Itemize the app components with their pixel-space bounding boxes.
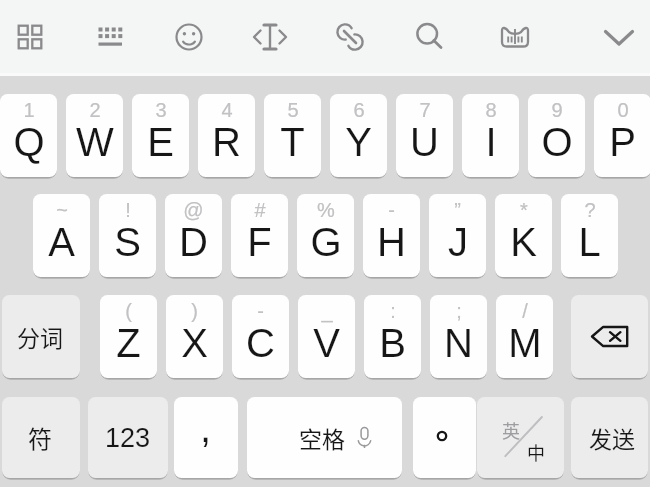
- button[interactable]: 5: [264, 94, 321, 177]
- staticText: 英: [502, 417, 520, 443]
- staticText: 3: [155, 99, 167, 121]
- button[interactable]: (: [100, 295, 157, 378]
- button[interactable]: Backspace: [571, 295, 648, 378]
- staticText: 7: [419, 99, 431, 121]
- staticText: 符: [28, 420, 52, 455]
- staticText: F: [247, 220, 272, 265]
- staticText: D: [179, 220, 208, 265]
- button[interactable]: -: [363, 194, 420, 277]
- button[interactable]: 123: [88, 397, 168, 478]
- button[interactable]: !: [99, 194, 156, 277]
- staticText: E: [147, 120, 174, 165]
- button[interactable]: #: [231, 194, 288, 277]
- staticText: 6: [353, 99, 365, 121]
- staticText: ?: [584, 199, 596, 221]
- button[interactable]: -: [232, 295, 289, 378]
- staticText: Y: [345, 120, 372, 165]
- button[interactable]: Keyboard layout: [84, 11, 136, 63]
- staticText: 发送: [589, 421, 635, 454]
- staticText: ): [191, 300, 198, 322]
- staticText: H: [377, 220, 406, 265]
- button[interactable]: 分词: [2, 295, 80, 378]
- button[interactable]: 3: [132, 94, 189, 177]
- button[interactable]: Voice input: [489, 11, 541, 63]
- staticText: :: [390, 300, 396, 322]
- button[interactable]: 发送: [571, 397, 648, 478]
- staticText: B: [379, 321, 406, 366]
- staticText: #: [254, 199, 266, 221]
- staticText: ~: [56, 199, 68, 221]
- button[interactable]: Switch English Chinese: [477, 397, 564, 478]
- staticText: P: [609, 120, 636, 165]
- staticText: W: [76, 120, 114, 165]
- staticText: S: [114, 220, 141, 265]
- staticText: X: [181, 321, 208, 366]
- staticText: 123: [105, 423, 151, 453]
- button[interactable]: %: [297, 194, 354, 277]
- staticText: T: [280, 120, 305, 165]
- staticText: *: [520, 199, 528, 221]
- staticText: I: [485, 120, 497, 165]
- button[interactable]: 4: [198, 94, 255, 177]
- staticText: G: [310, 220, 342, 265]
- staticText: A: [48, 220, 75, 265]
- button[interactable]: Cursor move: [244, 11, 296, 63]
- button[interactable]: ?: [561, 194, 618, 277]
- staticText: %: [317, 199, 335, 221]
- button[interactable]: Emoji: [163, 11, 215, 63]
- staticText: -: [257, 300, 264, 322]
- staticText: 中: [527, 439, 545, 465]
- staticText: N: [444, 321, 473, 366]
- staticText: @: [183, 199, 204, 221]
- staticText: 2: [89, 99, 101, 121]
- button[interactable]: Comma: [174, 397, 238, 478]
- button[interactable]: *: [495, 194, 552, 277]
- button[interactable]: Search: [404, 11, 456, 63]
- staticText: 0: [617, 99, 629, 121]
- staticText: U: [410, 120, 439, 165]
- staticText: 1: [23, 99, 35, 121]
- button[interactable]: Full stop: [413, 397, 476, 478]
- button[interactable]: Grid: [4, 11, 56, 63]
- staticText: 9: [551, 99, 563, 121]
- button[interactable]: 空格: [247, 397, 402, 478]
- button[interactable]: 7: [396, 94, 453, 177]
- staticText: J: [448, 220, 468, 265]
- button[interactable]: @: [165, 194, 222, 277]
- staticText: ”: [454, 199, 461, 221]
- button[interactable]: _: [298, 295, 355, 378]
- button[interactable]: Collapse keyboard: [593, 11, 645, 63]
- staticText: _: [321, 300, 333, 322]
- button[interactable]: 符: [2, 397, 80, 478]
- staticText: 8: [485, 99, 497, 121]
- button[interactable]: 8: [462, 94, 519, 177]
- button[interactable]: /: [496, 295, 553, 378]
- staticText: V: [313, 321, 340, 366]
- staticText: C: [246, 321, 275, 366]
- staticText: (: [125, 300, 132, 322]
- button[interactable]: ): [166, 295, 223, 378]
- staticText: ,: [200, 406, 212, 451]
- button[interactable]: ”: [429, 194, 486, 277]
- staticText: Z: [116, 321, 141, 366]
- button[interactable]: Clipboard: [324, 11, 376, 63]
- staticText: ;: [456, 300, 462, 322]
- staticText: O: [541, 120, 573, 165]
- staticText: !: [125, 199, 131, 221]
- staticText: M: [508, 321, 542, 366]
- button[interactable]: 9: [528, 94, 585, 177]
- staticText: 空格: [299, 421, 345, 454]
- button[interactable]: :: [364, 295, 421, 378]
- staticText: Q: [13, 120, 45, 165]
- staticText: K: [510, 220, 537, 265]
- staticText: R: [212, 120, 241, 165]
- button[interactable]: 2: [66, 94, 123, 177]
- button[interactable]: ;: [430, 295, 487, 378]
- button[interactable]: ~: [33, 194, 90, 277]
- button[interactable]: 1: [0, 94, 57, 177]
- staticText: L: [578, 220, 601, 265]
- staticText: /: [522, 300, 528, 322]
- button[interactable]: 0: [594, 94, 650, 177]
- button[interactable]: 6: [330, 94, 387, 177]
- staticText: 分词: [17, 320, 63, 353]
